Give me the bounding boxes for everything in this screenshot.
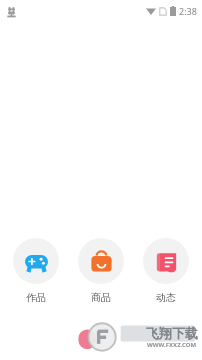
staticText: 动态 [156,291,176,304]
staticText: 2:38 [179,5,197,17]
button[interactable]: 动态 [137,238,195,304]
staticText: WWW.FXXZ.COM [147,341,197,349]
staticText: 作品 [26,291,46,304]
button[interactable]: 商品 [72,238,130,304]
staticText: 商品 [91,291,111,304]
staticText: 飞翔下载 [146,325,198,341]
button[interactable]: 作品 [7,238,65,304]
